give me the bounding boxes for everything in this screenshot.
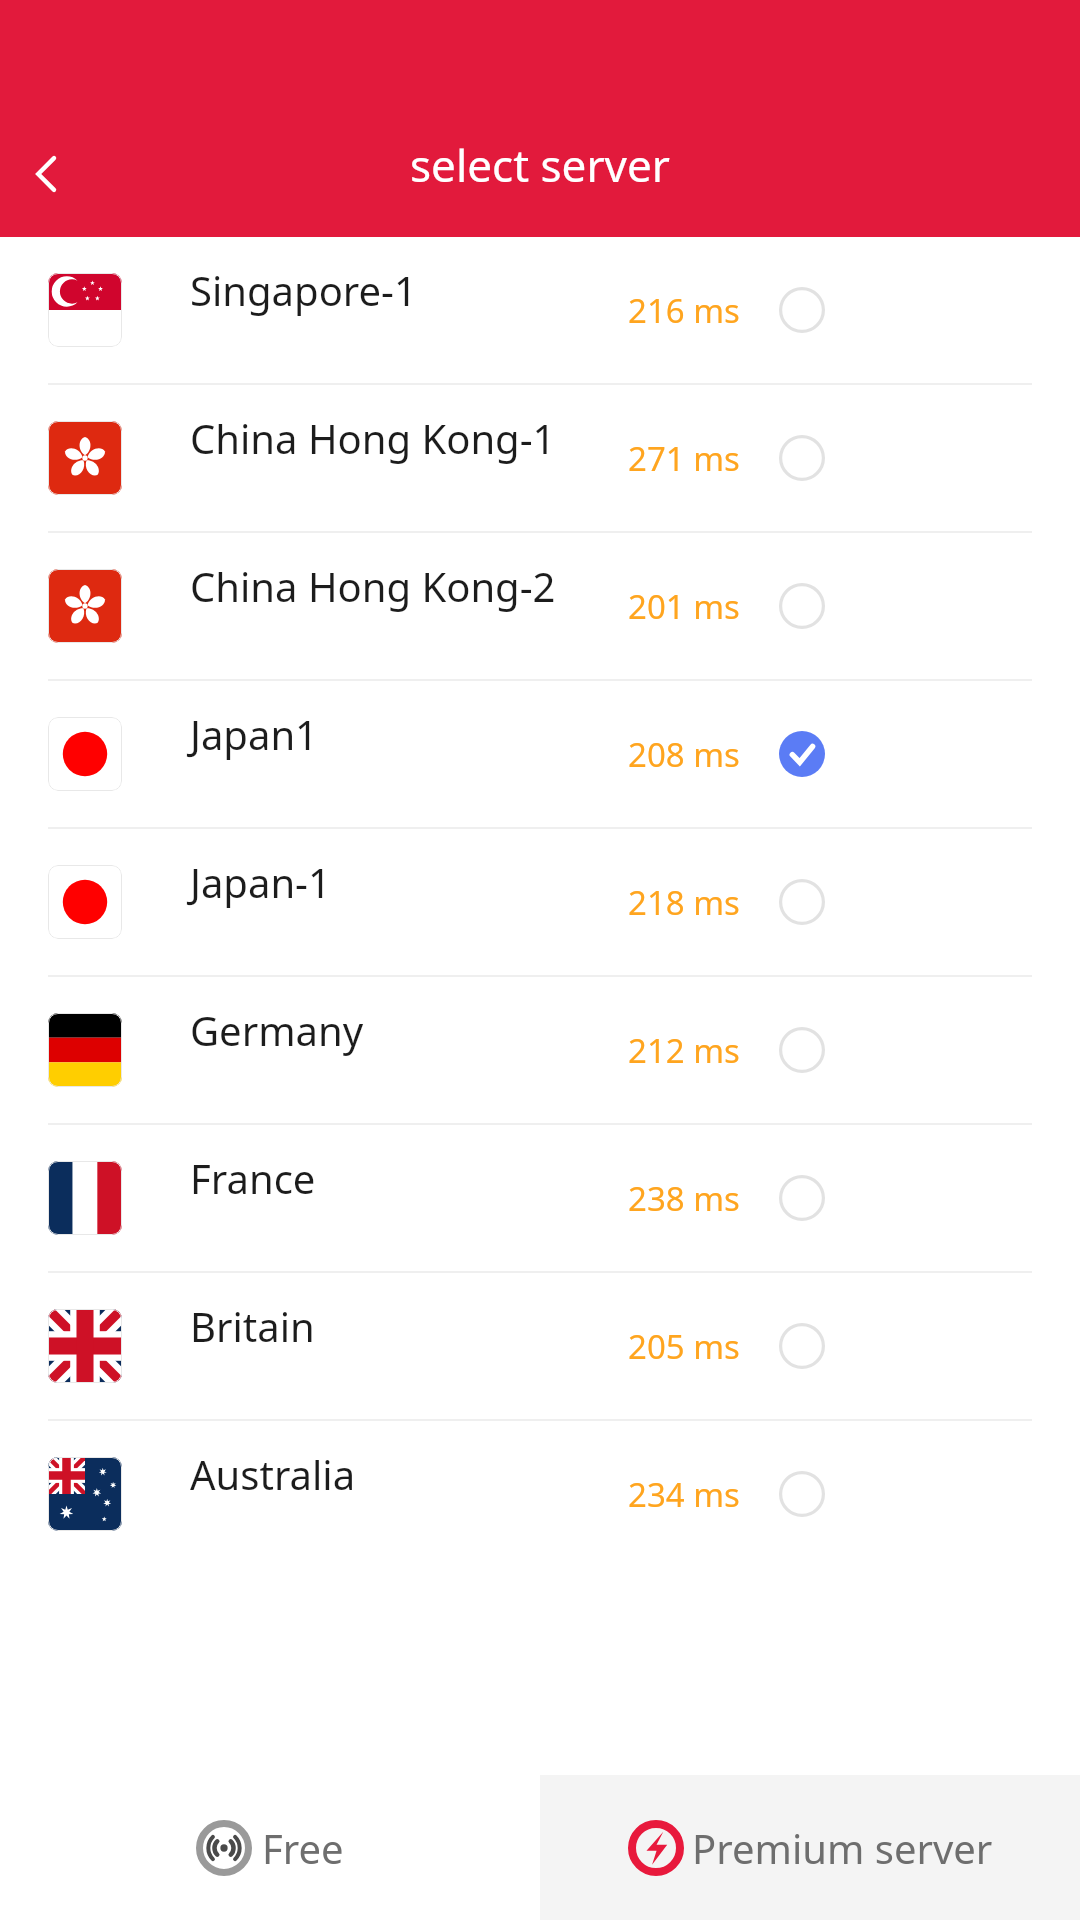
staticText: 212 ms [628,1028,740,1073]
button[interactable]: Free [0,1775,540,1920]
staticText: Free [262,1821,344,1875]
button[interactable]: Select France [773,1169,831,1227]
button[interactable]: Selected [773,725,831,783]
staticText: Japan1 [190,707,318,761]
staticText: China Hong Kong-1 [190,411,556,465]
staticText: France [190,1151,316,1205]
button[interactable]: Japan-1 [0,829,1080,975]
button[interactable]: Britain [0,1273,1080,1419]
button[interactable]: Select Japan-1 [773,873,831,931]
button[interactable]: China Hong Kong-2 [0,533,1080,679]
staticText: 216 ms [628,288,740,333]
staticText: 271 ms [628,436,740,481]
button[interactable]: Select China Hong Kong-1 [773,429,831,487]
button[interactable]: Singapore-1 [0,237,1080,383]
button[interactable]: Select China Hong Kong-2 [773,577,831,635]
staticText: Singapore-1 [190,263,417,317]
button[interactable]: France [0,1125,1080,1271]
button[interactable]: Japan1 [0,681,1080,827]
staticText: 234 ms [628,1472,740,1517]
staticText: Australia [190,1447,356,1501]
staticText: 205 ms [628,1324,740,1369]
button[interactable]: Select Australia [773,1465,831,1523]
button[interactable]: Premium server [540,1775,1080,1920]
button[interactable]: Australia [0,1421,1080,1567]
staticText: 208 ms [628,732,740,777]
button[interactable]: Select Britain [773,1317,831,1375]
staticText: China Hong Kong-2 [190,559,556,613]
staticText: select server [410,135,670,195]
staticText: 201 ms [628,584,740,629]
button[interactable]: China Hong Kong-1 [0,385,1080,531]
staticText: Britain [190,1299,315,1353]
staticText: Japan-1 [190,855,331,909]
button[interactable]: Germany [0,977,1080,1123]
staticText: 218 ms [628,880,740,925]
staticText: Germany [190,1003,364,1057]
button[interactable]: Select Singapore-1 [773,281,831,339]
staticText: Premium server [692,1821,993,1875]
button[interactable]: Select Germany [773,1021,831,1079]
button[interactable]: Back [10,137,84,211]
staticText: 238 ms [628,1176,740,1221]
